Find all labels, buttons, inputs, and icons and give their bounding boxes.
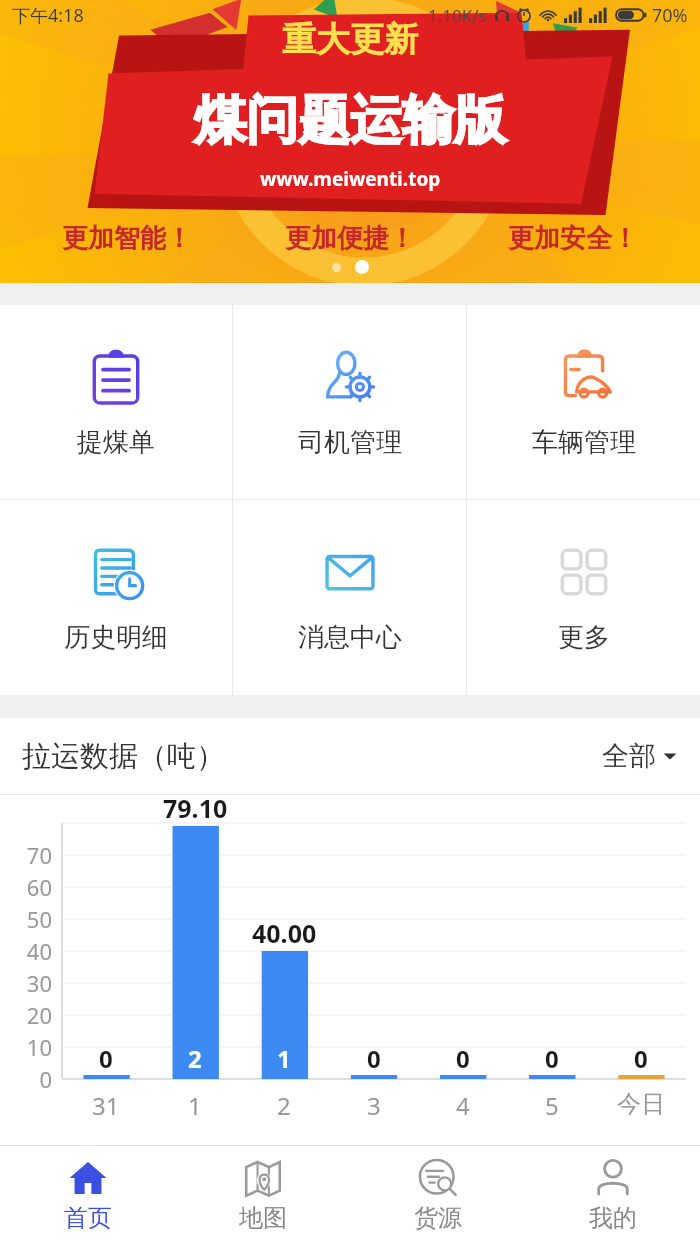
staticText: 70	[26, 840, 52, 870]
staticText: 更加便捷！	[285, 222, 415, 255]
staticText: 40.00	[252, 916, 317, 950]
staticText: 30	[26, 968, 52, 998]
staticText: 1.10K/s	[428, 4, 487, 27]
staticText: 重大更新	[282, 18, 418, 61]
staticText: 60	[26, 872, 52, 902]
staticText: 1	[277, 1042, 291, 1075]
staticText: 0	[456, 1042, 470, 1075]
staticText: 车辆管理	[532, 426, 636, 459]
staticText: 煤问题运输版	[194, 88, 506, 154]
staticText: 下午4:18	[12, 3, 84, 28]
button[interactable]: 货源	[350, 1146, 525, 1244]
staticText: 拉运数据（吨）	[22, 738, 225, 775]
button[interactable]: 消息中心	[233, 500, 466, 695]
staticText: 70%	[652, 3, 688, 28]
staticText: 40	[26, 936, 52, 966]
button[interactable]: 更多	[467, 500, 700, 695]
button[interactable]: 历史明细	[0, 500, 232, 695]
staticText: 0	[545, 1042, 559, 1075]
staticText: 79.10	[163, 791, 228, 825]
staticText: 1	[188, 1089, 202, 1122]
staticText: 首页	[64, 1203, 112, 1233]
button[interactable]: Promotional banner	[0, 0, 700, 283]
staticText: 司机管理	[298, 426, 402, 459]
staticText: 今日	[617, 1089, 665, 1119]
button[interactable]: 全部	[602, 739, 678, 773]
button[interactable]: 司机管理	[233, 305, 466, 499]
staticText: 20	[26, 1000, 52, 1030]
staticText: 50	[26, 904, 52, 934]
staticText: 4	[456, 1089, 470, 1122]
staticText: 历史明细	[64, 621, 168, 654]
staticText: 0	[39, 1064, 52, 1094]
button[interactable]: 提煤单	[0, 305, 232, 499]
button[interactable]: 首页	[0, 1146, 175, 1244]
button[interactable]: 车辆管理	[467, 305, 700, 499]
staticText: 0	[99, 1042, 113, 1075]
staticText: 地图	[239, 1203, 287, 1233]
staticText: 5	[545, 1089, 559, 1122]
staticText: 0	[367, 1042, 381, 1075]
staticText: 提煤单	[77, 426, 155, 459]
staticText: 更加智能！	[62, 222, 192, 255]
staticText: 31	[92, 1089, 120, 1122]
button[interactable]: 地图	[175, 1146, 350, 1244]
staticText: 0	[634, 1042, 648, 1075]
staticText: 我的	[589, 1203, 637, 1233]
staticText: 2	[277, 1089, 291, 1122]
staticText: 消息中心	[298, 621, 402, 654]
staticText: 更多	[558, 621, 610, 654]
staticText: www.meiwenti.top	[260, 166, 441, 192]
staticText: 3	[367, 1089, 381, 1122]
staticText: 全部	[602, 739, 656, 773]
button[interactable]: 我的	[525, 1146, 700, 1244]
staticText: 2	[188, 1042, 202, 1075]
staticText: 更加安全！	[508, 222, 638, 255]
staticText: 货源	[414, 1203, 462, 1233]
staticText: 10	[26, 1032, 52, 1062]
